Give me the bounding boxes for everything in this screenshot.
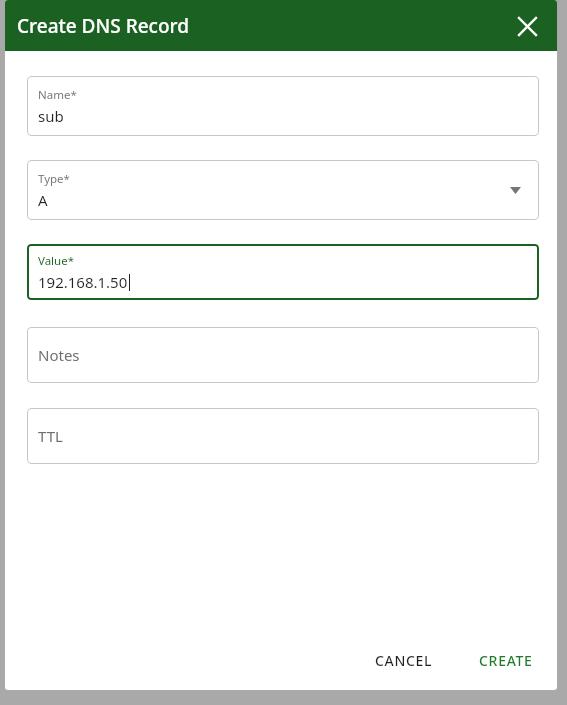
- button[interactable]: TTL: [27, 408, 539, 464]
- staticText: Notes: [38, 345, 80, 365]
- staticText: sub: [38, 106, 64, 126]
- staticText: Name*: [38, 87, 77, 103]
- staticText: TTL: [38, 426, 63, 446]
- staticText: Create DNS Record: [17, 13, 189, 39]
- button[interactable]: CANCEL: [363, 643, 445, 678]
- button[interactable]: Notes: [27, 327, 539, 383]
- staticText: 192.168.1.50: [38, 272, 128, 292]
- staticText: CREATE: [479, 651, 533, 670]
- staticText: Value*: [38, 253, 75, 269]
- staticText: A: [38, 190, 48, 210]
- button[interactable]: Name*: [27, 76, 539, 136]
- button[interactable]: Type*: [27, 160, 539, 220]
- button[interactable]: Value*: [27, 244, 539, 300]
- staticText: CANCEL: [375, 651, 433, 670]
- button[interactable]: Open dropdown: [505, 180, 525, 200]
- button[interactable]: Close: [507, 6, 547, 46]
- button[interactable]: CREATE: [467, 643, 545, 678]
- staticText: Type*: [38, 171, 70, 187]
